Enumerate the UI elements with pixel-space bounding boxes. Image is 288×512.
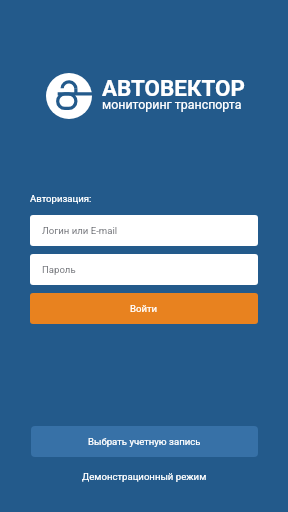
staticText: Выбрать учетную запись	[88, 436, 201, 447]
staticText: Авторизация:	[30, 193, 92, 204]
staticText: АВТОВЕКТОР	[102, 75, 245, 101]
button[interactable]: Войти	[30, 293, 258, 324]
staticText: мониторинг транспорта	[102, 97, 242, 112]
staticText: Войти	[130, 303, 158, 314]
staticText: Демонстрационный режим	[82, 471, 207, 482]
button[interactable]: Демонстрационный режим	[0, 465, 288, 487]
staticText: Пароль	[42, 264, 76, 275]
other: Автовектор	[46, 73, 92, 119]
button[interactable]: Выбрать учетную запись	[31, 426, 258, 457]
staticText: Логин или E-mail	[42, 225, 118, 236]
button[interactable]: Пароль	[30, 254, 258, 285]
button[interactable]: Логин или E-mail	[30, 215, 258, 246]
